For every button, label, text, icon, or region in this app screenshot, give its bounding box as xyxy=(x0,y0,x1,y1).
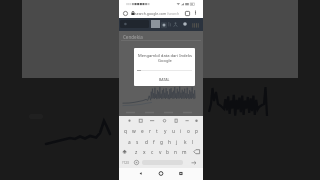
button[interactable]: g xyxy=(160,139,163,146)
staticText: v xyxy=(159,149,162,156)
button[interactable]: q xyxy=(124,128,127,135)
button[interactable]: h xyxy=(168,139,171,146)
staticText: search.google.com xyxy=(135,11,167,16)
button[interactable]: i xyxy=(180,128,182,135)
staticText: l xyxy=(192,139,194,146)
staticText: t xyxy=(156,128,158,135)
button[interactable]: j xyxy=(176,139,178,146)
button[interactable]: f xyxy=(153,139,155,146)
staticText: q xyxy=(124,128,127,135)
staticText: u xyxy=(172,128,175,135)
staticText: x xyxy=(143,149,146,156)
staticText: h xyxy=(168,139,171,146)
button[interactable]: c xyxy=(151,149,154,156)
button[interactable]: Enter xyxy=(191,160,197,166)
button[interactable]: b xyxy=(166,149,169,156)
staticText: e xyxy=(141,128,144,135)
staticText: s xyxy=(136,139,139,146)
button[interactable]: v xyxy=(159,149,162,156)
button[interactable]: r xyxy=(149,128,151,135)
button[interactable]: t xyxy=(156,128,158,135)
staticText: y xyxy=(164,128,167,135)
button[interactable]: o xyxy=(187,128,190,135)
staticText: p xyxy=(195,128,198,135)
button[interactable]: u xyxy=(172,128,175,135)
button[interactable]: d xyxy=(145,139,148,146)
button[interactable]: x xyxy=(143,149,146,156)
button[interactable]: Tabs xyxy=(185,11,190,16)
staticText: z xyxy=(135,149,138,156)
staticText: i xyxy=(180,128,182,135)
button[interactable]: m xyxy=(182,149,187,156)
staticText: a xyxy=(128,139,131,146)
button[interactable]: Search xyxy=(120,20,149,28)
button[interactable]: z xyxy=(135,149,138,156)
button[interactable]: s xyxy=(136,139,139,146)
staticText: Mengambil data dari Indeks Google xyxy=(137,53,193,63)
staticText: g xyxy=(160,139,163,146)
button[interactable]: k xyxy=(184,139,187,146)
button[interactable]: n xyxy=(174,149,177,156)
staticText: BATAL xyxy=(159,77,170,82)
button[interactable]: w xyxy=(132,128,136,135)
staticText: o xyxy=(187,128,190,135)
staticText: ?123 xyxy=(122,161,129,165)
staticText: /search xyxy=(167,11,180,16)
button[interactable]: l xyxy=(192,139,194,146)
staticText: n xyxy=(174,149,177,156)
staticText: k xyxy=(184,139,187,146)
button[interactable]: Emoji xyxy=(134,160,139,165)
staticText: j xyxy=(176,139,178,146)
staticText: m xyxy=(182,149,187,156)
staticText: f xyxy=(153,139,155,146)
button[interactable]: BATAL xyxy=(155,76,174,83)
button[interactable]: e xyxy=(141,128,144,135)
staticText: Cendekia xyxy=(123,34,143,40)
button[interactable]: More options xyxy=(193,10,198,15)
staticText: b xyxy=(166,149,169,156)
button[interactable]: p xyxy=(195,128,198,135)
staticText: r xyxy=(149,128,151,135)
button[interactable]: a xyxy=(128,139,131,146)
staticText: w xyxy=(132,128,136,135)
button[interactable]: ?123 xyxy=(120,159,131,166)
staticText: d xyxy=(145,139,148,146)
button[interactable]: y xyxy=(164,128,167,135)
button[interactable]: Account xyxy=(161,21,167,29)
staticText: c xyxy=(151,149,154,156)
button[interactable]: Home xyxy=(123,11,128,16)
